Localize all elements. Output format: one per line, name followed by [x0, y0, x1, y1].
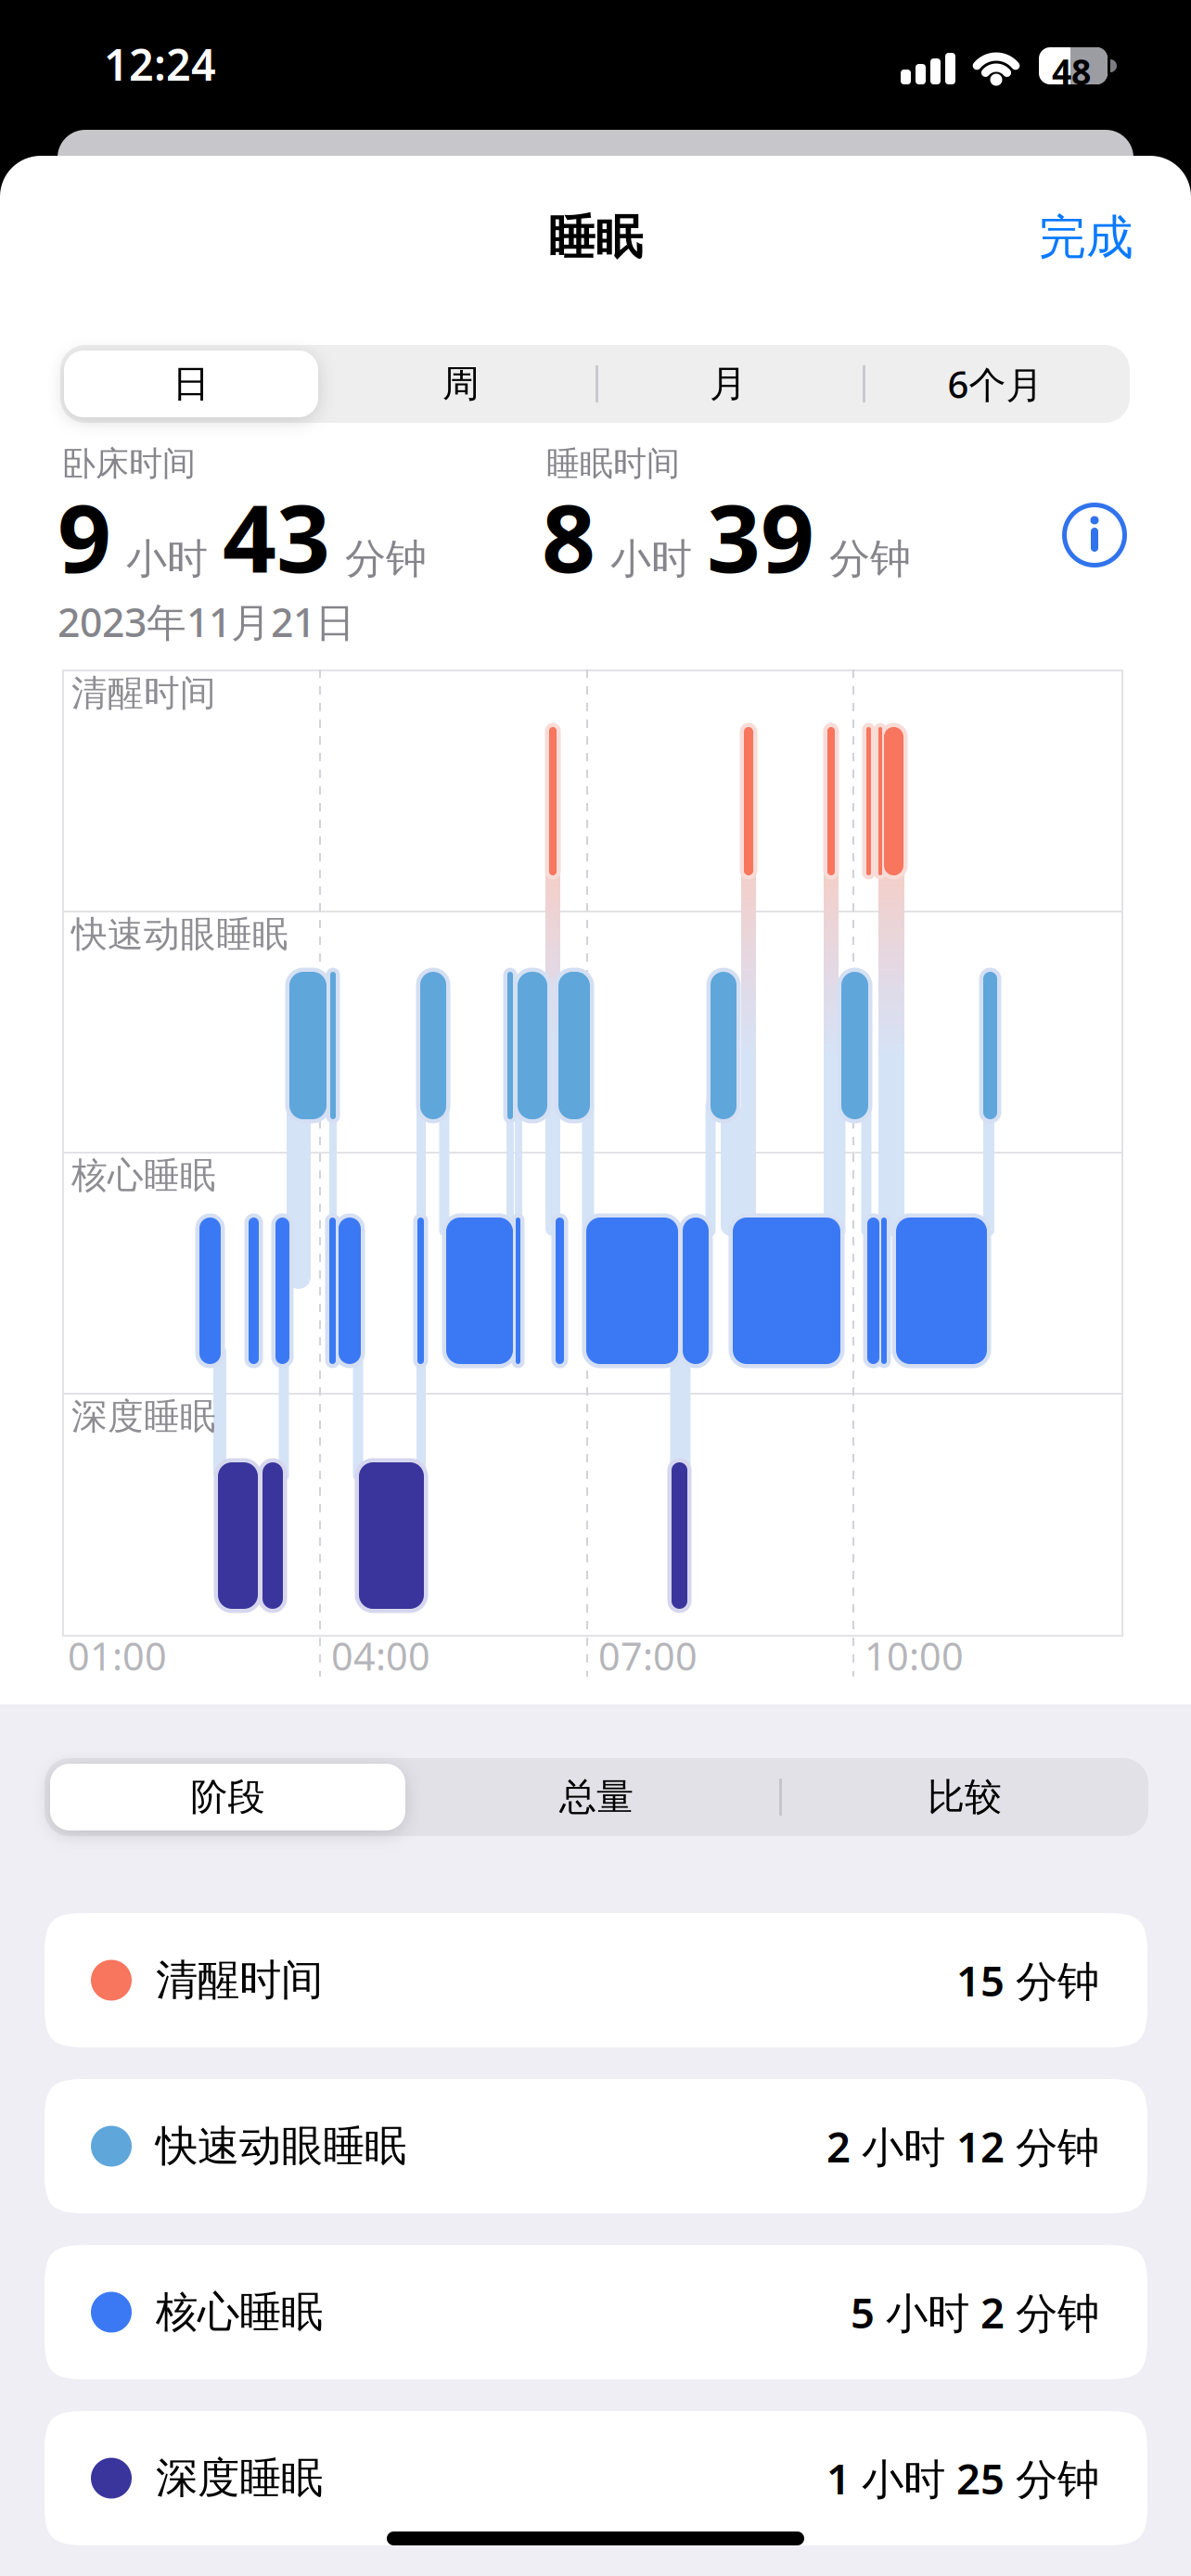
- staticText: 43: [223, 474, 330, 599]
- button[interactable]: 阶段: [50, 1764, 405, 1830]
- staticText: 5 小时 2 分钟: [851, 2284, 1099, 2340]
- staticText: 比较: [928, 1774, 1002, 1820]
- staticText: 总量: [559, 1774, 634, 1820]
- staticText: 完成: [1039, 209, 1133, 266]
- staticText: 深度睡眠: [71, 1395, 216, 1439]
- staticText: 2 小时 12 分钟: [826, 2118, 1099, 2174]
- button[interactable]: 6个月: [865, 345, 1125, 423]
- button[interactable]: 周: [331, 345, 591, 423]
- staticText: 9: [58, 474, 111, 599]
- staticText: 小时: [126, 534, 208, 584]
- staticText: 清醒时间: [71, 671, 216, 715]
- button[interactable]: 日: [64, 351, 318, 417]
- staticText: 核心睡眠: [71, 1154, 216, 1198]
- staticText: 2023年11月21日: [58, 595, 355, 648]
- staticText: 睡眠时间: [546, 443, 680, 484]
- staticText: 39: [707, 474, 814, 599]
- staticText: 月: [710, 361, 747, 407]
- staticText: 48: [1052, 48, 1091, 94]
- staticText: 核心睡眠: [156, 2286, 323, 2338]
- staticText: 清醒时间: [156, 1954, 323, 2006]
- button[interactable]: 比较: [784, 1758, 1146, 1836]
- staticText: 快速动眼睡眠: [156, 2120, 406, 2172]
- button[interactable]: 月: [598, 345, 858, 423]
- staticText: 分钟: [345, 534, 427, 584]
- staticText: 深度睡眠: [156, 2452, 323, 2504]
- staticText: 日: [173, 361, 210, 407]
- staticText: 小时: [610, 534, 692, 584]
- button[interactable]: 总量: [416, 1758, 777, 1836]
- staticText: 卧床时间: [62, 443, 196, 484]
- staticText: 12:24: [104, 35, 216, 93]
- staticText: 阶段: [191, 1774, 265, 1820]
- staticText: 8: [542, 474, 595, 599]
- staticText: 10:00: [864, 1630, 964, 1681]
- staticText: 睡眠: [548, 209, 643, 266]
- staticText: 07:00: [598, 1630, 698, 1681]
- staticText: 01:00: [68, 1630, 167, 1681]
- staticText: 周: [442, 361, 480, 407]
- staticText: 15 分钟: [956, 1952, 1099, 2008]
- staticText: 6个月: [948, 359, 1043, 408]
- staticText: 分钟: [829, 534, 911, 584]
- button[interactable]: 关于睡眠数据: [1062, 503, 1127, 567]
- staticText: 04:00: [331, 1630, 430, 1681]
- button[interactable]: 完成: [1039, 209, 1133, 266]
- staticText: 1 小时 25 分钟: [826, 2450, 1099, 2506]
- staticText: 快速动眼睡眠: [71, 912, 288, 956]
